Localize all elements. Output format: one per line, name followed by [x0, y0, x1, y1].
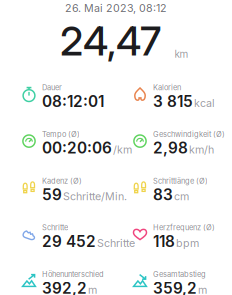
staticText: 00:20:06 [42, 139, 112, 157]
staticText: km/h [189, 143, 214, 156]
staticText: 392,2 [42, 279, 87, 295]
staticText: /km [113, 143, 132, 156]
staticText: Schritte [97, 237, 135, 250]
staticText: m [198, 283, 207, 295]
staticText: 2,98 [153, 139, 188, 157]
staticText: Höhenunterschied [42, 270, 104, 279]
staticText: 26. Mai 2023, 08:12 [65, 1, 167, 14]
staticText: 359,2 [153, 279, 197, 295]
staticText: 118 [153, 232, 175, 251]
staticText: Herzfrequenz (Ø) [153, 223, 215, 232]
staticText: 59 [42, 185, 62, 204]
staticText: Dauer [42, 83, 62, 92]
staticText: Kadenz (Ø) [42, 176, 82, 185]
staticText: Gesamtabstieg [153, 270, 206, 279]
staticText: bpm [176, 237, 199, 250]
staticText: Schritte/Min. [63, 190, 127, 203]
staticText: 29 452 [42, 232, 96, 251]
staticText: Kalorien [153, 83, 181, 92]
staticText: km [174, 48, 188, 60]
staticText: cm [174, 190, 189, 203]
staticText: kcal [194, 97, 215, 109]
staticText: Schritte [42, 223, 68, 232]
staticText: 3 815 [153, 92, 193, 111]
staticText: 83 [153, 185, 173, 204]
staticText: Tempo (Ø) [42, 130, 80, 139]
staticText: m [88, 283, 97, 295]
staticText: 08:12:01 [42, 92, 104, 111]
staticText: Geschwindigkeit (Ø) [153, 130, 225, 139]
staticText: 24,47 [60, 17, 161, 65]
staticText: Schrittlänge (Ø) [153, 176, 208, 185]
